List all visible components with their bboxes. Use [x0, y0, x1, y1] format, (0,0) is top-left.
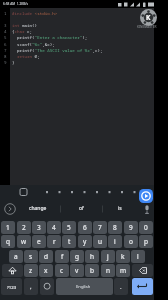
staticText: b [90, 266, 94, 275]
staticText: 0 [144, 223, 148, 232]
staticText: q [6, 237, 10, 246]
staticText: 2 [22, 223, 26, 232]
staticText: g [75, 252, 79, 261]
staticText: 4 [52, 223, 56, 232]
staticText: ?123 [7, 284, 17, 290]
staticText: , [30, 283, 32, 291]
staticText: 6 [4, 42, 7, 48]
staticText: d [44, 252, 48, 261]
staticText: v [75, 266, 79, 275]
staticText: 7 [98, 223, 102, 232]
staticText: English [76, 284, 91, 290]
staticText: 8 [113, 223, 117, 232]
staticText: 5 [4, 35, 7, 41]
staticText: 3 [37, 223, 41, 232]
staticText: l [137, 252, 139, 261]
staticText: 6:58 AM 1.2KB/s [3, 2, 28, 6]
staticText: 1 [6, 223, 10, 232]
staticText: n [106, 266, 111, 275]
staticText: c [60, 266, 64, 275]
staticText: p [144, 237, 148, 246]
staticText: t [68, 237, 71, 246]
staticText: {char c; [12, 29, 33, 35]
staticText: s [29, 252, 33, 261]
staticText: is [118, 205, 122, 212]
staticText: K [146, 13, 151, 22]
staticText: printf("Enter a character"); [12, 35, 88, 41]
staticText: KINEMASTER [137, 25, 157, 29]
staticText: f [61, 252, 64, 261]
staticText: i [114, 237, 116, 246]
staticText: j [107, 252, 109, 261]
staticText: w [21, 237, 27, 246]
staticText: return 0; [12, 54, 40, 60]
staticText: 4 [4, 29, 7, 35]
staticText: k [121, 252, 125, 261]
staticText: r [53, 237, 56, 246]
staticText: of [79, 205, 84, 212]
staticText: scanf("%c",&c); [12, 42, 55, 48]
staticText: printf("The ASCII value of %c",c); [12, 48, 103, 54]
staticText: } [12, 60, 15, 66]
staticText: #include <stdio.h> [12, 11, 58, 17]
staticText: 9 [4, 60, 7, 66]
staticText: o [129, 237, 133, 246]
staticText: . [120, 283, 122, 291]
staticText: 6 [83, 223, 87, 232]
staticText: 9 [129, 223, 133, 232]
staticText: int main() [12, 23, 38, 29]
staticText: change [29, 205, 47, 212]
staticText: a [14, 252, 18, 261]
staticText: 3 [4, 23, 7, 29]
staticText: e [37, 237, 41, 246]
staticText: 7 [4, 48, 7, 54]
staticText: u [98, 237, 103, 246]
staticText: y [83, 237, 87, 246]
staticText: h [90, 252, 95, 261]
staticText: 5 [67, 223, 71, 232]
staticText: z [29, 266, 33, 275]
staticText: m [120, 266, 127, 275]
staticText: 8 [4, 54, 7, 60]
staticText: 1 [4, 11, 7, 17]
staticText: x [44, 266, 48, 275]
